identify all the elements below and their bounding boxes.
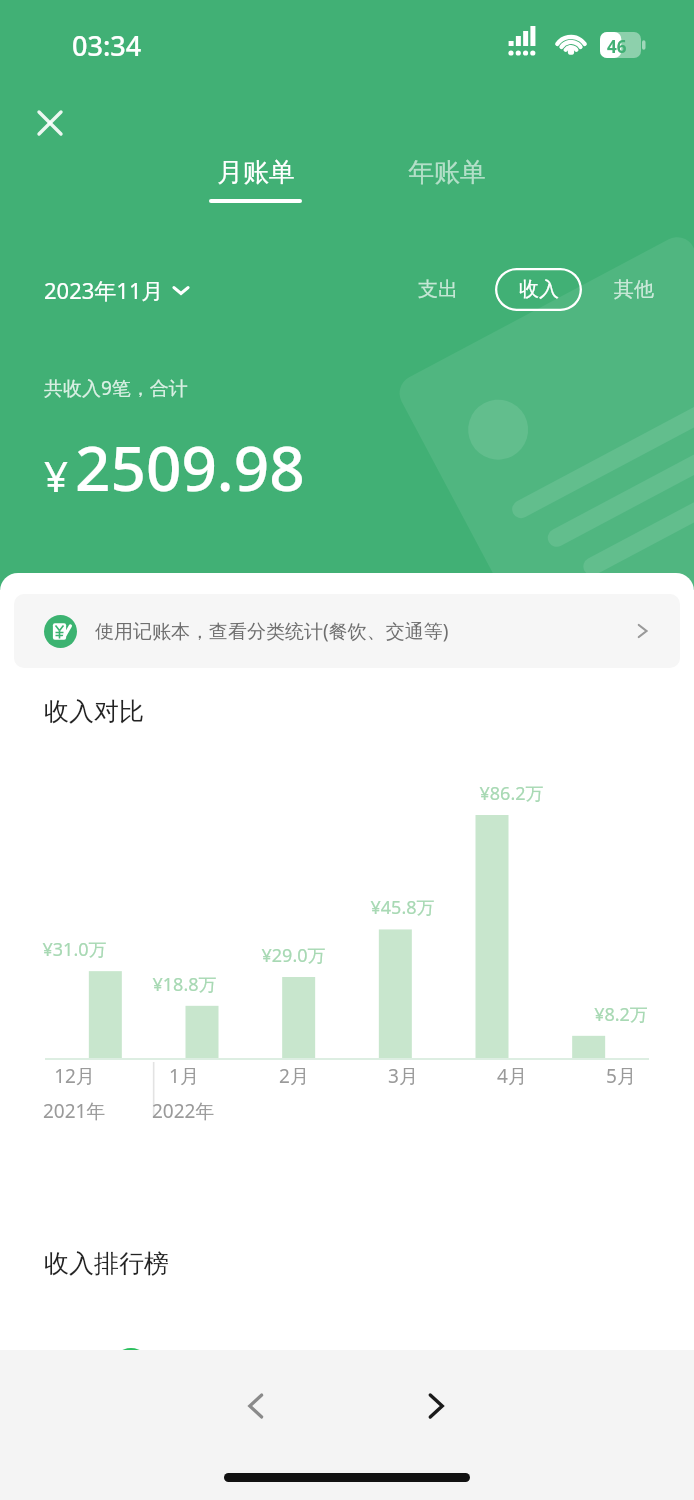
staticText: ¥8.2万	[594, 1002, 648, 1027]
staticText: 2509.98	[75, 425, 305, 509]
staticText: 12月	[54, 1063, 95, 1089]
staticText: 收入	[519, 277, 559, 302]
button[interactable]: 年账单	[398, 152, 496, 207]
button[interactable]: Forward	[400, 1370, 472, 1442]
button[interactable]: Back	[220, 1370, 292, 1442]
staticText: 2023年11月	[44, 275, 164, 305]
staticText: 4月	[497, 1063, 527, 1089]
staticText: 收入排行榜	[44, 1248, 169, 1279]
staticText: 2021年	[43, 1098, 106, 1124]
staticText: 5月	[606, 1063, 636, 1089]
staticText: ¥45.8万	[370, 895, 435, 920]
button[interactable]: 月账单	[199, 152, 312, 207]
staticText: 年账单	[408, 156, 486, 189]
staticText: 3月	[388, 1063, 418, 1089]
staticText: ¥86.2万	[479, 781, 544, 806]
staticText: 2022年	[152, 1098, 215, 1124]
staticText: 收入对比	[44, 696, 144, 727]
button[interactable]: Close	[26, 99, 74, 147]
staticText: ¥	[44, 447, 69, 504]
button[interactable]: 使用记账本，查看分类统计(餐饮、交通等)	[14, 594, 680, 668]
staticText: 使用记账本，查看分类统计(餐饮、交通等)	[95, 618, 449, 644]
staticText: 03:34	[72, 27, 142, 64]
button[interactable]: 收入	[495, 268, 582, 311]
button[interactable]: 支出	[418, 277, 458, 302]
staticText: 46	[607, 35, 627, 58]
staticText: 月账单	[217, 156, 295, 189]
staticText: 共收入9笔，合计	[44, 375, 188, 401]
staticText: ¥29.0万	[261, 943, 326, 968]
staticText: 1月	[169, 1063, 199, 1089]
staticText: ¥18.8万	[152, 972, 217, 997]
staticText: 2月	[279, 1063, 309, 1089]
button[interactable]: 其他	[614, 277, 654, 302]
button[interactable]: 2023年11月	[44, 275, 189, 305]
staticText: ¥31.0万	[42, 937, 107, 962]
